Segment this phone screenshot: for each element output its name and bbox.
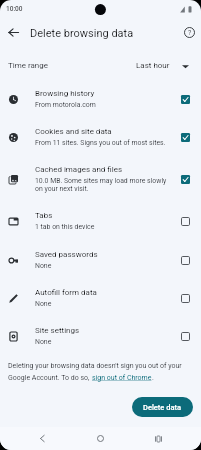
button[interactable]: Cookies and site data — [0, 119, 201, 155]
staticText: Browsing history — [35, 89, 95, 98]
staticText: Deleting your browsing data doesn't sign… — [8, 362, 182, 370]
button[interactable]: Cached images and files — [177, 171, 194, 188]
staticText: on your next visit. — [35, 185, 89, 193]
staticText: Saved passwords — [35, 250, 98, 259]
staticText: From motorola.com — [35, 101, 96, 109]
button[interactable]: Tabs — [177, 213, 194, 230]
staticText: Tabs — [35, 211, 53, 220]
staticText: 10.0 MB. Some sites may load more slowly — [35, 177, 167, 185]
staticText: Autofill form data — [35, 288, 97, 297]
button[interactable]: Time range — [0, 53, 201, 79]
staticText: None — [35, 262, 52, 270]
staticText: Delete data — [143, 403, 182, 412]
staticText: None — [35, 338, 52, 346]
button[interactable]: Navigate up — [2, 21, 25, 44]
button[interactable]: Saved passwords — [0, 242, 201, 278]
staticText: None — [35, 300, 52, 308]
staticText: ? — [188, 29, 192, 37]
staticText: 10:00 — [6, 5, 23, 13]
button[interactable]: Recent apps — [144, 427, 172, 450]
button[interactable]: sign out of Chrome — [92, 374, 152, 382]
button[interactable]: Site settings — [177, 328, 194, 345]
button[interactable]: Autofill form data — [0, 280, 201, 316]
staticText: Site settings — [35, 326, 80, 335]
staticText: Delete browsing data — [30, 27, 134, 40]
staticText: Google Account. To do so, — [8, 374, 92, 382]
button[interactable]: Autofill form data — [177, 290, 194, 307]
staticText: From 11 sites. Signs you out of most sit… — [35, 139, 166, 147]
button[interactable]: Cookies and site data — [177, 129, 194, 146]
button[interactable]: Help — [178, 21, 201, 44]
button[interactable]: Site settings — [0, 318, 201, 354]
staticText: . — [152, 374, 154, 382]
button[interactable]: Home — [86, 427, 114, 450]
staticText: Cached images and files — [35, 165, 123, 174]
button[interactable]: Tabs — [0, 203, 201, 239]
button[interactable]: Browsing history — [0, 81, 201, 117]
button[interactable]: Browsing history — [177, 91, 194, 108]
button[interactable]: Back — [28, 427, 56, 450]
button[interactable]: Saved passwords — [177, 252, 194, 269]
staticText: Cookies and site data — [35, 127, 112, 136]
staticText: Time range — [8, 61, 49, 70]
button[interactable]: Delete data — [132, 397, 193, 417]
button[interactable]: Cached images and files — [0, 158, 201, 200]
staticText: 1 tab on this device — [35, 223, 95, 231]
staticText: Last hour — [136, 61, 170, 70]
